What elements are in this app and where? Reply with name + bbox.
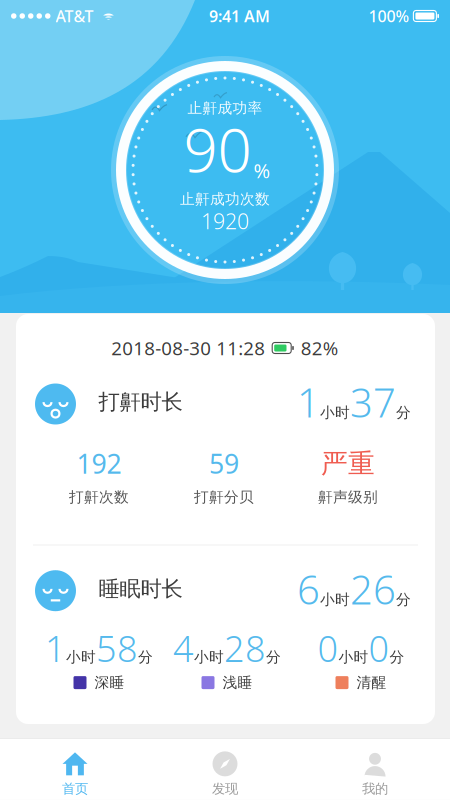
staticText: 分 — [396, 404, 411, 422]
staticText: 首页 — [62, 781, 88, 797]
staticText: AT&T — [55, 5, 93, 27]
staticText: 26 — [350, 562, 396, 615]
staticText: 58 — [96, 624, 138, 672]
staticText: 清醒 — [356, 674, 386, 692]
button[interactable]: 我的 — [300, 739, 450, 800]
staticText: 1920 — [201, 207, 249, 235]
staticText: 0 — [317, 624, 338, 672]
staticText: 6 — [297, 562, 320, 615]
button[interactable]: 发现 — [150, 739, 300, 800]
staticText: 我的 — [362, 781, 388, 797]
staticText: 分 — [389, 648, 404, 666]
staticText: 9:41 AM — [209, 5, 270, 27]
staticText: 浅睡 — [222, 674, 252, 692]
staticText: 分 — [138, 648, 153, 666]
staticText: 90 — [183, 109, 251, 189]
staticText: 打鼾次数 — [69, 488, 129, 506]
staticText: 鼾声级别 — [318, 488, 378, 506]
staticText: 止鼾成功率 — [187, 99, 262, 117]
staticText: 2018-08-30 11:28 — [111, 336, 265, 360]
staticText: 1 — [297, 375, 320, 428]
staticText: 59 — [209, 446, 239, 481]
staticText: 4 — [173, 624, 194, 672]
staticText: 1 — [45, 624, 66, 672]
staticText: 分 — [266, 648, 281, 666]
staticText: % — [253, 157, 270, 184]
staticText: 小时 — [194, 648, 224, 666]
staticText: 192 — [76, 446, 121, 481]
staticText: 深睡 — [94, 674, 124, 692]
staticText: 小时 — [338, 648, 368, 666]
staticText: 止鼾成功次数 — [180, 190, 270, 208]
staticText: 严重 — [321, 447, 375, 480]
staticText: 0 — [368, 624, 389, 672]
staticText: 睡眠时长 — [98, 576, 182, 602]
staticText: 小时 — [320, 404, 350, 422]
button[interactable]: 首页 — [0, 739, 150, 800]
staticText: 100% — [368, 5, 409, 27]
staticText: 小时 — [320, 591, 350, 609]
staticText: 打鼾分贝 — [194, 488, 254, 506]
staticText: 打鼾时长 — [98, 389, 182, 415]
staticText: 发现 — [212, 781, 238, 797]
staticText: 37 — [350, 375, 396, 428]
staticText: 分 — [396, 591, 411, 609]
staticText: 28 — [224, 624, 266, 672]
staticText: 82% — [301, 336, 339, 360]
staticText: 小时 — [66, 648, 96, 666]
